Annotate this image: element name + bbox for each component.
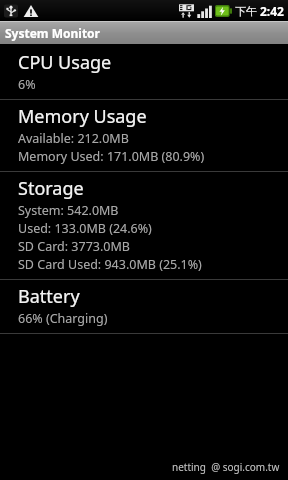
staticText: Used: 133.0MB (24.6%) [18,220,152,237]
staticText: Available: 212.0MB [18,130,129,147]
staticText: Storage [18,176,84,201]
button[interactable]: Memory Usage [0,100,288,171]
staticText: System: 542.0MB [18,202,119,219]
staticText: 下午 [235,4,257,18]
staticText: Memory Usage [18,104,147,129]
staticText: 66% (Charging) [18,310,108,327]
staticText: 2:42 [260,3,284,19]
staticText: CPU Usage [18,50,112,75]
staticText: netting @ sogi.com.tw [172,460,280,474]
staticText: System Monitor [5,25,100,41]
staticText: 6% [18,76,36,93]
staticText: SD Card Used: 943.0MB (25.1%) [18,256,202,273]
button[interactable]: Battery [0,280,288,333]
staticText: SD Card: 3773.0MB [18,238,130,255]
button[interactable]: CPU Usage [0,46,288,99]
button[interactable]: Storage [0,172,288,279]
staticText: Memory Used: 171.0MB (80.9%) [18,148,205,165]
staticText: Battery [18,284,80,309]
